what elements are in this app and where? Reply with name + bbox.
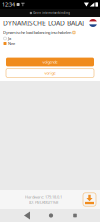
button[interactable]: volgende — [6, 58, 94, 66]
staticText: ID: PBLR0021168 — [29, 199, 58, 205]
staticText: 12:34 — [2, 1, 15, 8]
staticText: DYNAMISCHE LOAD BALAI — [3, 19, 84, 27]
button[interactable]: Nee — [0, 41, 100, 46]
staticText: Hardware: 179.18.0.1 — [25, 194, 62, 199]
button[interactable]: Home — [39, 209, 63, 222]
button[interactable]: Download — [83, 193, 96, 206]
staticText: Ja — [8, 36, 11, 41]
staticText: Dynamische load balancing inschakelen — [3, 30, 71, 35]
button[interactable]: Terug — [15, 209, 39, 222]
staticText: vorige — [44, 70, 55, 76]
button[interactable]: vorige — [6, 69, 94, 77]
button[interactable]: Recente apps — [63, 209, 87, 222]
button[interactable]: Ja — [0, 36, 100, 41]
button[interactable]: Meer informatie — [72, 31, 76, 34]
staticText: Nee — [8, 41, 15, 46]
staticText: Geen internetverbinding — [33, 11, 70, 15]
staticText: volgende — [42, 59, 57, 65]
